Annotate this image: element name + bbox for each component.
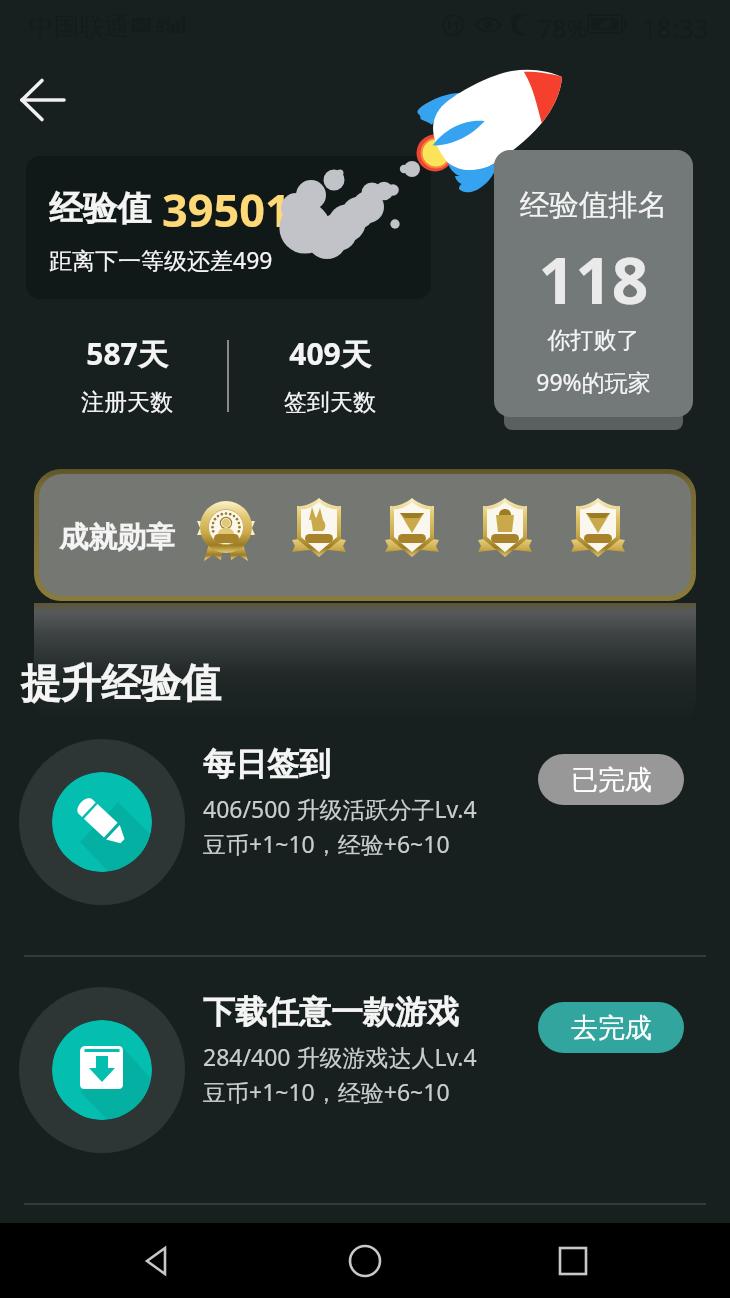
button[interactable]: 已完成 [538, 754, 684, 805]
staticText: 豆币+1~10，经验+6~10 [203, 1076, 450, 1107]
button[interactable]: Medal [284, 494, 354, 572]
button[interactable]: 下载任意一款游戏 [0, 988, 730, 1198]
button[interactable]: 每日签到 [0, 740, 730, 950]
staticText: 587天 [27, 333, 227, 374]
staticText: 提升经验值 [21, 658, 221, 708]
button[interactable]: Medal [191, 494, 261, 572]
staticText: 406/500 升级活跃分子Lv.4 [203, 793, 477, 824]
staticText: 你打败了 [494, 326, 693, 355]
staticText: 距离下一等级还差499 [49, 244, 273, 275]
button[interactable]: 成就勋章 [39, 474, 691, 596]
staticText: 经验值排名 [494, 187, 693, 224]
button[interactable]: 经验值 [26, 156, 431, 299]
staticText: 经验值 [49, 187, 151, 230]
button[interactable]: 去完成 [538, 1002, 684, 1053]
staticText: 409天 [230, 333, 430, 374]
button[interactable]: 经验值排名 [494, 150, 693, 417]
staticText: 284/400 升级游戏达人Lv.4 [203, 1041, 477, 1072]
staticText: 下载任意一款游戏 [203, 992, 459, 1032]
button[interactable]: Back [108, 1223, 208, 1298]
button[interactable]: Back [6, 62, 82, 138]
staticText: 签到天数 [230, 388, 430, 417]
staticText: 每日签到 [203, 744, 331, 784]
staticText: 39501 [162, 179, 291, 240]
staticText: 已完成 [571, 763, 652, 797]
staticText: 成就勋章 [59, 519, 175, 556]
button[interactable]: Medal [563, 494, 633, 572]
staticText: 豆币+1~10，经验+6~10 [203, 828, 450, 859]
staticText: 118 [494, 236, 693, 323]
staticText: 去完成 [571, 1011, 652, 1045]
button[interactable]: Medal [470, 494, 540, 572]
button[interactable]: Recents [523, 1223, 623, 1298]
button[interactable]: Home [315, 1223, 415, 1298]
staticText: 99%的玩家 [494, 366, 693, 397]
button[interactable]: Medal [377, 494, 447, 572]
staticText: 注册天数 [27, 388, 227, 417]
